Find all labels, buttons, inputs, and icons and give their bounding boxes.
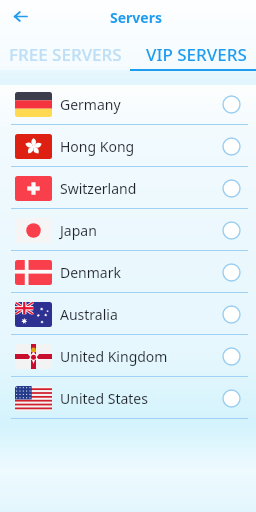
staticText: United Kingdom <box>60 347 168 366</box>
staticText: Switzerland <box>60 179 137 198</box>
button[interactable]: FREE SERVERS <box>0 0 130 71</box>
staticText: Hong Kong <box>60 137 135 156</box>
staticText: FREE SERVERS <box>9 43 122 66</box>
staticText: Japan <box>60 221 97 240</box>
button[interactable]: Switzerland <box>0 167 256 209</box>
staticText: Germany <box>60 95 121 114</box>
button[interactable]: Hong Kong <box>0 125 256 167</box>
staticText: Servers <box>110 8 162 27</box>
button[interactable]: Australia <box>0 293 256 335</box>
staticText: United States <box>60 389 148 408</box>
button[interactable]: Japan <box>0 209 256 251</box>
button[interactable]: Denmark <box>0 251 256 293</box>
button[interactable]: United States <box>0 377 256 419</box>
staticText: Australia <box>60 305 118 324</box>
button[interactable]: Germany <box>0 83 256 125</box>
button[interactable]: VIP SERVERS <box>130 0 256 71</box>
staticText: Denmark <box>60 263 121 282</box>
button[interactable]: United Kingdom <box>0 335 256 377</box>
staticText: VIP SERVERS <box>146 43 247 66</box>
button[interactable]: Back <box>7 3 34 30</box>
